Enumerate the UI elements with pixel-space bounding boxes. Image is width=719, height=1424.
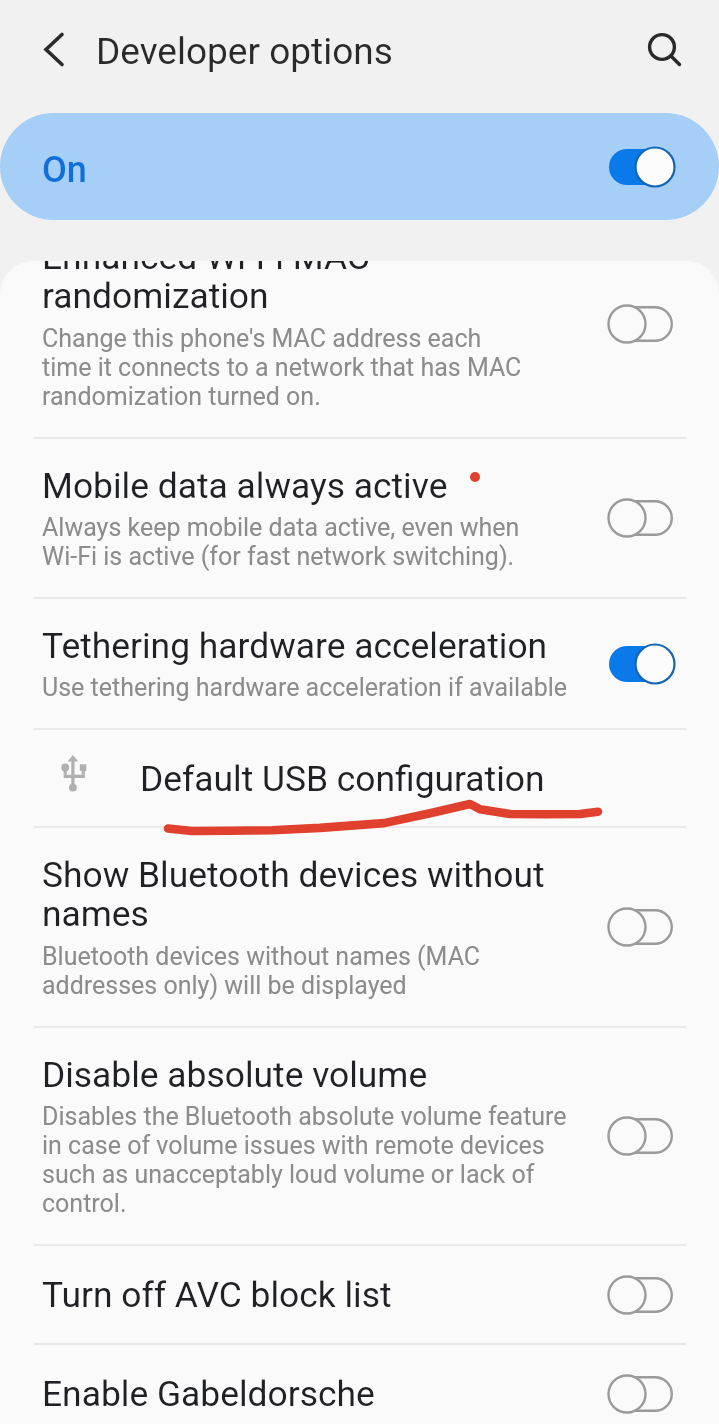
staticText: Disables the Bluetooth absolute volume f… (42, 1102, 567, 1218)
staticText: Change this phone's MAC address each tim… (42, 324, 522, 411)
button[interactable]: Turn on (609, 907, 673, 947)
button[interactable]: Turn on (609, 304, 673, 344)
button[interactable]: On (0, 113, 719, 220)
button[interactable]: Turn on (609, 1374, 673, 1414)
staticText: Enable Gabeldorsche (42, 1373, 375, 1414)
button[interactable]: Enable Gabeldorsche (0, 1345, 719, 1424)
staticText: Mobile data always active (42, 465, 448, 506)
button[interactable]: Enhanced Wi-Fi MAC randomization (0, 261, 719, 437)
button[interactable]: Turn off (609, 644, 673, 684)
staticText: Disable absolute volume (42, 1054, 428, 1095)
button[interactable]: Show Bluetooth devices without names (0, 828, 719, 1026)
button[interactable]: Mobile data always active (0, 439, 719, 597)
staticText: Tethering hardware acceleration (42, 625, 548, 666)
staticText: Developer options (96, 30, 393, 73)
button[interactable]: Turn off AVC block list (0, 1246, 719, 1343)
button[interactable]: Back (26, 22, 82, 78)
staticText: Show Bluetooth devices without names (42, 854, 545, 935)
button[interactable]: Turn off (609, 147, 673, 187)
staticText: Use tethering hardware acceleration if a… (42, 673, 568, 702)
staticText: Turn off AVC block list (42, 1274, 392, 1315)
staticText: Default USB configuration (140, 758, 545, 799)
staticText: Enhanced Wi-Fi MAC randomization (42, 261, 370, 317)
staticText: Always keep mobile data active, even whe… (42, 513, 520, 571)
button[interactable]: Disable absolute volume (0, 1028, 719, 1244)
button[interactable]: Turn on (609, 498, 673, 538)
button[interactable]: Turn on (609, 1116, 673, 1156)
staticText: On (42, 149, 87, 191)
button[interactable]: Turn on (609, 1275, 673, 1315)
staticText: Bluetooth devices without names (MAC add… (42, 942, 481, 1000)
button[interactable]: Search (635, 20, 695, 80)
button[interactable]: Default USB configuration (0, 730, 719, 826)
button[interactable]: Tethering hardware acceleration (0, 599, 719, 728)
